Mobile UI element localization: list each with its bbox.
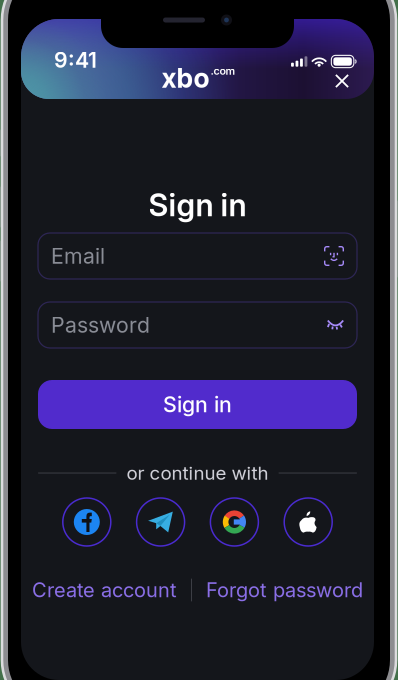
button[interactable]: Sign in with Facebook xyxy=(62,497,112,547)
staticText: xbo xyxy=(161,62,209,94)
staticText: Create account xyxy=(32,578,177,602)
staticText: Sign in xyxy=(163,392,232,417)
staticText: 9:41 xyxy=(54,47,97,73)
button[interactable]: Sign in with Telegram xyxy=(136,497,186,547)
button[interactable]: Close xyxy=(327,66,357,96)
button[interactable]: Create account xyxy=(18,574,191,606)
button[interactable]: Sign in xyxy=(38,380,357,429)
staticText: Forgot password xyxy=(206,578,363,602)
button[interactable]: Forgot password xyxy=(192,574,377,606)
staticText: Sign in xyxy=(148,186,246,223)
staticText: Password xyxy=(51,312,150,338)
button[interactable]: Sign in with Google xyxy=(209,497,259,547)
button[interactable]: Password xyxy=(38,302,357,348)
staticText: Email xyxy=(51,243,105,269)
button[interactable]: Email xyxy=(38,233,357,279)
button[interactable]: Sign in with Apple xyxy=(283,497,333,547)
staticText: .com xyxy=(210,64,235,77)
staticText: or continue with xyxy=(126,462,268,484)
